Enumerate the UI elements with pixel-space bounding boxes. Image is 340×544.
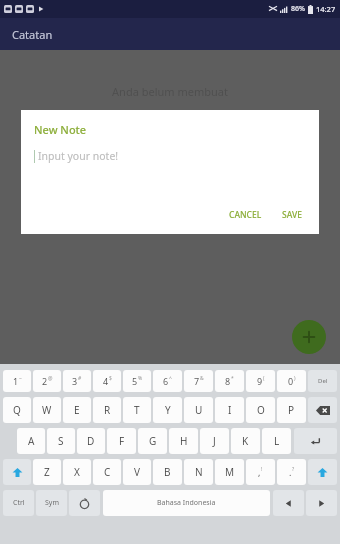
- staticText: Sym: [45, 498, 59, 508]
- button[interactable]: Z: [33, 459, 61, 485]
- staticText: R: [104, 403, 111, 417]
- staticText: CANCEL: [229, 209, 262, 221]
- staticText: B: [164, 465, 171, 479]
- staticText: U: [195, 403, 203, 417]
- staticText: H: [180, 434, 188, 448]
- staticText: 4: [103, 375, 109, 387]
- button[interactable]: Bahasa Indonesia: [103, 490, 270, 516]
- button[interactable]: 4: [93, 370, 121, 392]
- button[interactable]: 0: [277, 370, 306, 392]
- button[interactable]: Ctrl: [3, 490, 34, 516]
- button[interactable]: M: [215, 459, 244, 485]
- staticText: Input your note!: [38, 149, 119, 163]
- button[interactable]: D: [77, 428, 105, 454]
- staticText: C: [104, 465, 111, 479]
- staticText: ~: [19, 375, 22, 382]
- button[interactable]: E: [63, 397, 91, 423]
- button[interactable]: S: [47, 428, 75, 454]
- staticText: Q: [13, 403, 21, 417]
- staticText: L: [274, 434, 280, 448]
- button[interactable]: 8: [215, 370, 244, 392]
- staticText: SAVE: [282, 209, 302, 221]
- button[interactable]: G: [138, 428, 167, 454]
- staticText: ?: [292, 466, 295, 473]
- staticText: ,: [258, 466, 261, 478]
- button[interactable]: Y: [153, 397, 182, 423]
- staticText: 7: [194, 375, 200, 387]
- button[interactable]: .: [277, 459, 306, 485]
- button[interactable]: CANCEL: [226, 207, 265, 223]
- button[interactable]: 7: [184, 370, 213, 392]
- staticText: .: [289, 466, 292, 478]
- staticText: V: [134, 465, 140, 479]
- staticText: O: [257, 403, 265, 417]
- staticText: K: [242, 434, 249, 448]
- button[interactable]: X: [63, 459, 91, 485]
- staticText: 9: [257, 375, 263, 387]
- button[interactable]: Add note: [292, 320, 326, 354]
- button[interactable]: R: [93, 397, 121, 423]
- button[interactable]: Backspace: [308, 397, 337, 423]
- staticText: Z: [44, 465, 50, 479]
- button[interactable]: J: [200, 428, 229, 454]
- staticText: D: [87, 434, 95, 448]
- button[interactable]: W: [33, 397, 61, 423]
- button[interactable]: N: [184, 459, 213, 485]
- button[interactable]: 5: [123, 370, 151, 392]
- staticText: 8: [225, 375, 231, 387]
- staticText: Del: [318, 377, 328, 385]
- staticText: S: [58, 434, 64, 448]
- staticText: 3: [72, 375, 78, 387]
- staticText: Catatan: [12, 27, 53, 42]
- button[interactable]: Left: [273, 490, 304, 516]
- staticText: G: [149, 434, 157, 448]
- staticText: 1: [13, 375, 19, 387]
- button[interactable]: 2: [33, 370, 61, 392]
- staticText: P: [288, 403, 295, 417]
- button[interactable]: B: [153, 459, 182, 485]
- staticText: M: [225, 465, 235, 479]
- button[interactable]: K: [231, 428, 260, 454]
- button[interactable]: U: [184, 397, 213, 423]
- staticText: (: [263, 375, 265, 382]
- button[interactable]: F: [107, 428, 136, 454]
- button[interactable]: L: [262, 428, 291, 454]
- staticText: T: [134, 403, 140, 417]
- button[interactable]: Del: [308, 370, 337, 392]
- button[interactable]: T: [123, 397, 151, 423]
- button[interactable]: Emoji: [69, 490, 100, 516]
- button[interactable]: C: [93, 459, 121, 485]
- button[interactable]: Enter: [294, 428, 337, 454]
- button[interactable]: P: [277, 397, 306, 423]
- button[interactable]: 6: [153, 370, 182, 392]
- button[interactable]: I: [215, 397, 244, 423]
- button[interactable]: A: [17, 428, 45, 454]
- staticText: 5: [132, 375, 138, 387]
- button[interactable]: ,: [246, 459, 275, 485]
- button[interactable]: Shift: [308, 459, 337, 485]
- staticText: #: [78, 375, 82, 382]
- staticText: Ctrl: [13, 498, 25, 508]
- button[interactable]: O: [246, 397, 275, 423]
- button[interactable]: 1: [3, 370, 31, 392]
- staticText: Y: [165, 403, 171, 417]
- button[interactable]: V: [123, 459, 151, 485]
- button[interactable]: SAVE: [279, 207, 305, 223]
- staticText: *: [231, 375, 234, 382]
- staticText: N: [195, 465, 203, 479]
- button[interactable]: 9: [246, 370, 275, 392]
- button[interactable]: Q: [3, 397, 31, 423]
- staticText: W: [42, 403, 52, 417]
- button[interactable]: Sym: [36, 490, 67, 516]
- staticText: &: [200, 375, 204, 382]
- staticText: 14:27: [316, 4, 336, 14]
- button[interactable]: Shift: [3, 459, 31, 485]
- button[interactable]: 3: [63, 370, 91, 392]
- staticText: ): [294, 375, 296, 382]
- button[interactable]: Right: [306, 490, 337, 516]
- button[interactable]: H: [169, 428, 198, 454]
- staticText: New Note: [34, 122, 87, 137]
- staticText: @: [48, 375, 53, 382]
- staticText: Anda belum membuat: [112, 84, 228, 99]
- staticText: E: [74, 403, 80, 417]
